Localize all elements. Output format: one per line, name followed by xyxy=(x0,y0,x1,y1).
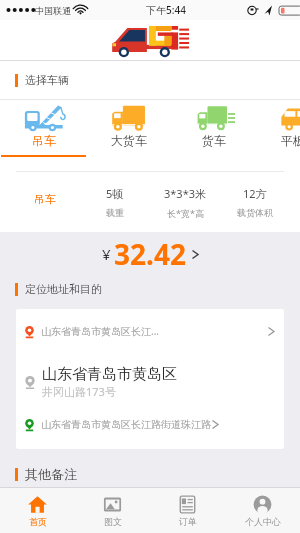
button[interactable]: 首页 xyxy=(0,488,75,533)
staticText: 12方 xyxy=(243,186,267,201)
staticText: 平板车 xyxy=(281,133,300,148)
staticText: 吊车 xyxy=(32,133,56,148)
staticText: ¥ xyxy=(102,244,111,264)
staticText: 山东省青岛市黄岛区长江... xyxy=(41,324,160,338)
staticText: 图文 xyxy=(104,516,122,527)
staticText: 订单 xyxy=(179,516,197,527)
button[interactable]: 山东省青岛市黄岛区 xyxy=(16,364,284,400)
button[interactable]: 山东省青岛市黄岛区长江... xyxy=(16,319,284,343)
staticText: 长*宽*高 xyxy=(167,207,204,219)
staticText: 大货车 xyxy=(111,133,147,148)
staticText: 下午5:44 xyxy=(146,3,186,17)
staticText: 载货体积 xyxy=(237,207,273,218)
staticText: 个人中心 xyxy=(245,516,281,527)
button[interactable]: 大货车 xyxy=(86,100,171,157)
button[interactable]: 货车 xyxy=(171,100,256,157)
staticText: 其他备注 xyxy=(25,466,77,482)
staticText: 山东省青岛市黄岛区长江路街道珠江路 xyxy=(41,418,211,431)
staticText: 山东省青岛市黄岛区 xyxy=(42,365,177,384)
button[interactable]: ¥ xyxy=(0,232,300,276)
staticText: 3*3*3米 xyxy=(164,186,206,201)
staticText: 货车 xyxy=(202,133,226,148)
staticText: 定位地址和目的 xyxy=(25,282,102,296)
button[interactable]: 订单 xyxy=(150,488,225,533)
staticText: 载重 xyxy=(106,207,124,218)
staticText: 5顿 xyxy=(106,186,124,201)
button[interactable]: 个人中心 xyxy=(225,488,300,533)
button[interactable]: 图文 xyxy=(75,488,150,533)
staticText: 32.42 xyxy=(114,235,186,273)
staticText: 吊车 xyxy=(34,192,56,206)
staticText: 首页 xyxy=(29,516,47,527)
staticText: 中国联通 xyxy=(35,5,71,16)
staticText: 选择车辆 xyxy=(25,73,69,87)
button[interactable]: 山东省青岛市黄岛区长江路街道珠江路 xyxy=(16,412,284,436)
staticText: 井冈山路173号 xyxy=(42,384,116,399)
button[interactable]: 平板车 xyxy=(256,100,300,157)
button[interactable]: 吊车 xyxy=(1,100,86,157)
